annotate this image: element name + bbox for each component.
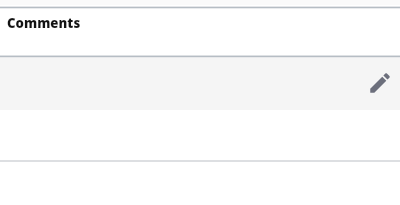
button[interactable]: Comments: [0, 8, 400, 56]
button[interactable]: Edit comment: [367, 70, 393, 96]
button[interactable]: Edit comment: [0, 56, 400, 109]
staticText: Comments: [7, 14, 81, 32]
